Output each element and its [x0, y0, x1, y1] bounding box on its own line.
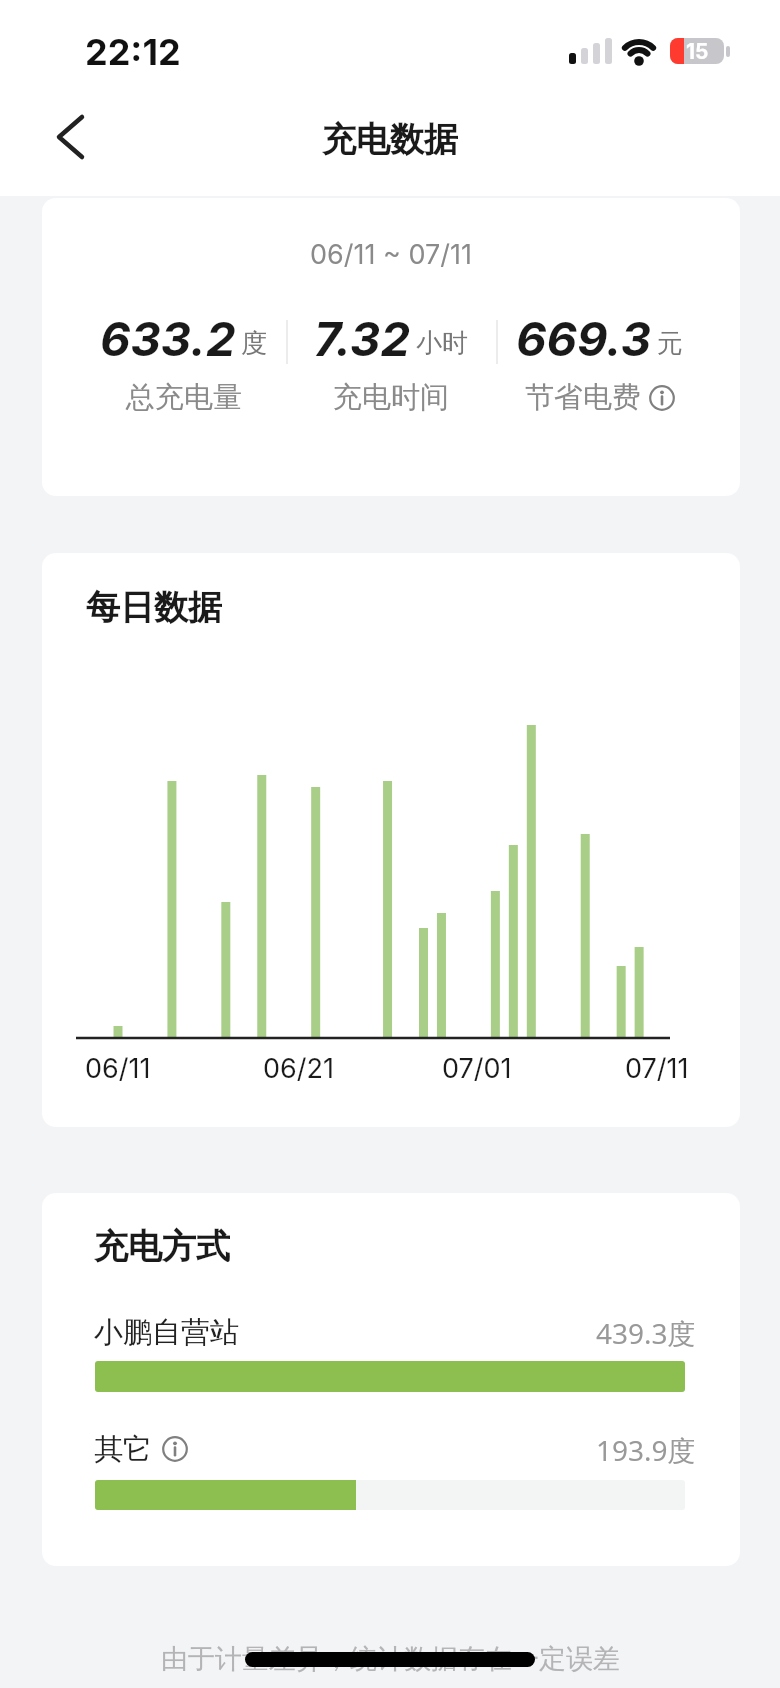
button[interactable]	[40, 110, 96, 166]
button[interactable]: 节省电费	[525, 379, 675, 416]
staticText: 06/21	[263, 1052, 334, 1085]
staticText: 节省电费	[525, 379, 641, 416]
staticText: 07/11	[625, 1052, 689, 1085]
staticText: 439.3度	[596, 1314, 696, 1350]
staticText: 度	[241, 327, 267, 360]
staticText: 193.9度	[596, 1431, 696, 1467]
staticText: 22:12	[85, 30, 181, 70]
staticText: 7.32	[314, 310, 411, 367]
staticText: 总充电量	[126, 379, 242, 416]
staticText: 669.3	[516, 310, 652, 367]
staticText: 633.2	[100, 310, 236, 367]
staticText: 充电时间	[333, 379, 449, 416]
staticText: 每日数据	[86, 586, 222, 628]
staticText: 充电数据	[322, 118, 458, 160]
staticText: 其它	[94, 1431, 152, 1467]
staticText: 06/11 ~ 07/11	[310, 238, 472, 271]
staticText: 元	[657, 327, 683, 360]
staticText: 小时	[416, 327, 468, 360]
button[interactable]: 其它	[94, 1431, 188, 1467]
staticText: 小鹏自营站	[94, 1314, 239, 1350]
staticText: 15	[686, 39, 709, 63]
staticText: 由于计量差异，统计数据存在一定误差	[161, 1642, 620, 1676]
staticText: 06/11	[85, 1052, 151, 1085]
staticText: 充电方式	[94, 1225, 230, 1265]
staticText: 07/01	[442, 1052, 512, 1085]
